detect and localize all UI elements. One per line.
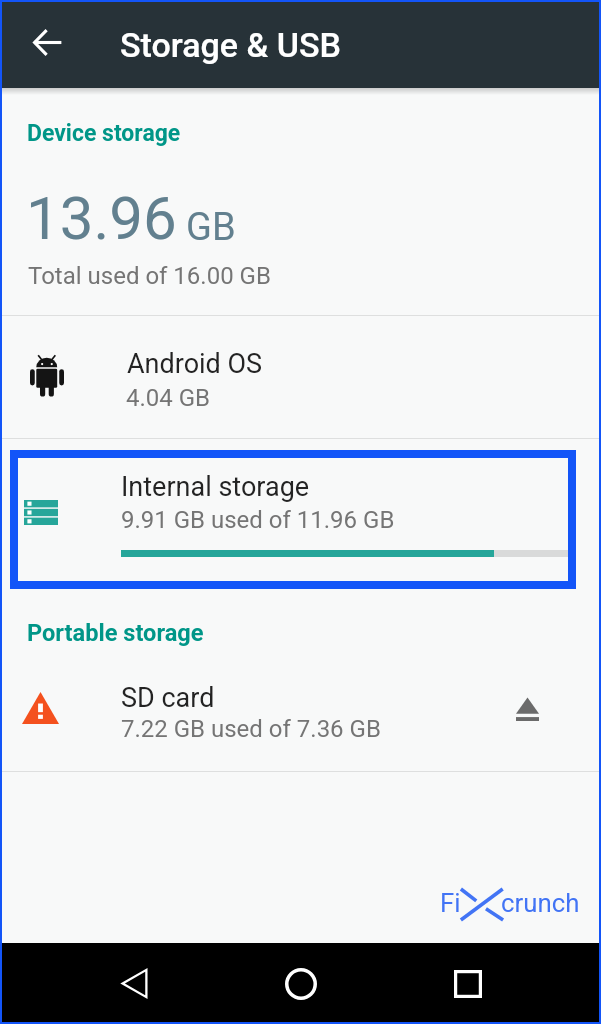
staticText: Internal storage [121,471,310,503]
button[interactable]: Home [251,943,351,1024]
staticText: 4.04 GB [126,384,211,412]
button[interactable]: Eject SD card [495,677,559,741]
button[interactable]: Back [84,943,184,1024]
staticText: 7.22 GB used of 7.36 GB [121,715,381,743]
button[interactable]: Recent apps [418,943,518,1024]
staticText: crunch [501,888,580,918]
button[interactable] [0,315,601,438]
staticText: 9.91 GB used of 11.96 GB [121,506,395,534]
staticText: Total used of 16.00 GB [28,262,271,290]
staticText: Portable storage [27,619,204,647]
staticText: SD card [121,682,215,714]
button[interactable] [0,439,601,595]
staticText: Fi [440,888,461,918]
button[interactable] [0,663,601,769]
staticText: 13.96 [26,183,177,253]
staticText: Android OS [127,348,263,380]
staticText: Storage & USB [120,25,342,65]
staticText: Device storage [27,120,181,147]
button[interactable]: Navigate up [22,17,72,67]
staticText: GB [186,205,236,250]
